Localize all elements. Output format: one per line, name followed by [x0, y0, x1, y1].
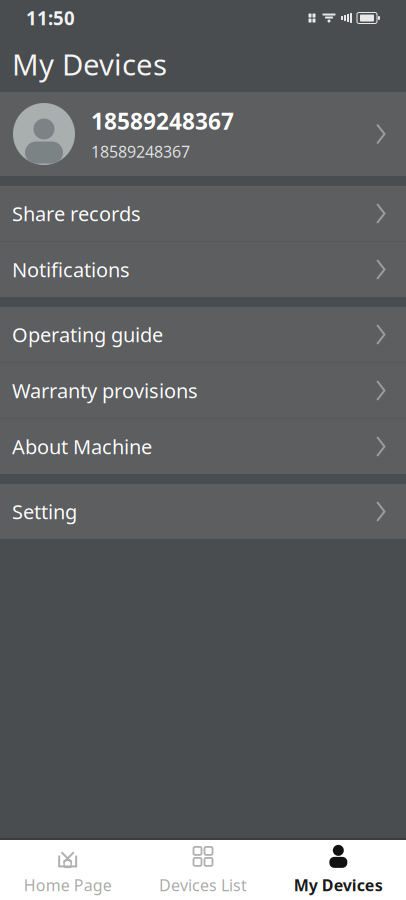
button[interactable]: My Devices	[271, 840, 406, 900]
button[interactable]: Home Page	[0, 840, 135, 900]
button[interactable]: Devices List	[135, 840, 271, 900]
button[interactable]: About Machine	[0, 419, 406, 474]
staticText: Warranty provisions	[12, 377, 198, 404]
staticText: Devices List	[159, 874, 247, 896]
button[interactable]: Warranty provisions	[0, 363, 406, 418]
staticText: My Devices	[12, 44, 167, 83]
staticText: 18589248367	[91, 141, 190, 162]
staticText: 18589248367	[91, 106, 234, 136]
button[interactable]: Setting	[0, 484, 406, 539]
button[interactable]: Notifications	[0, 242, 406, 297]
staticText: About Machine	[12, 433, 152, 460]
button[interactable]: Share records	[0, 186, 406, 241]
staticText: 11:50	[26, 6, 75, 30]
staticText: Operating guide	[12, 321, 163, 348]
button[interactable]: 18589248367	[0, 92, 406, 176]
staticText: My Devices	[294, 874, 383, 896]
button[interactable]: Operating guide	[0, 307, 406, 362]
staticText: Notifications	[12, 256, 130, 283]
staticText: Home Page	[24, 874, 112, 896]
staticText: Share records	[12, 200, 141, 227]
staticText: Setting	[12, 498, 77, 525]
